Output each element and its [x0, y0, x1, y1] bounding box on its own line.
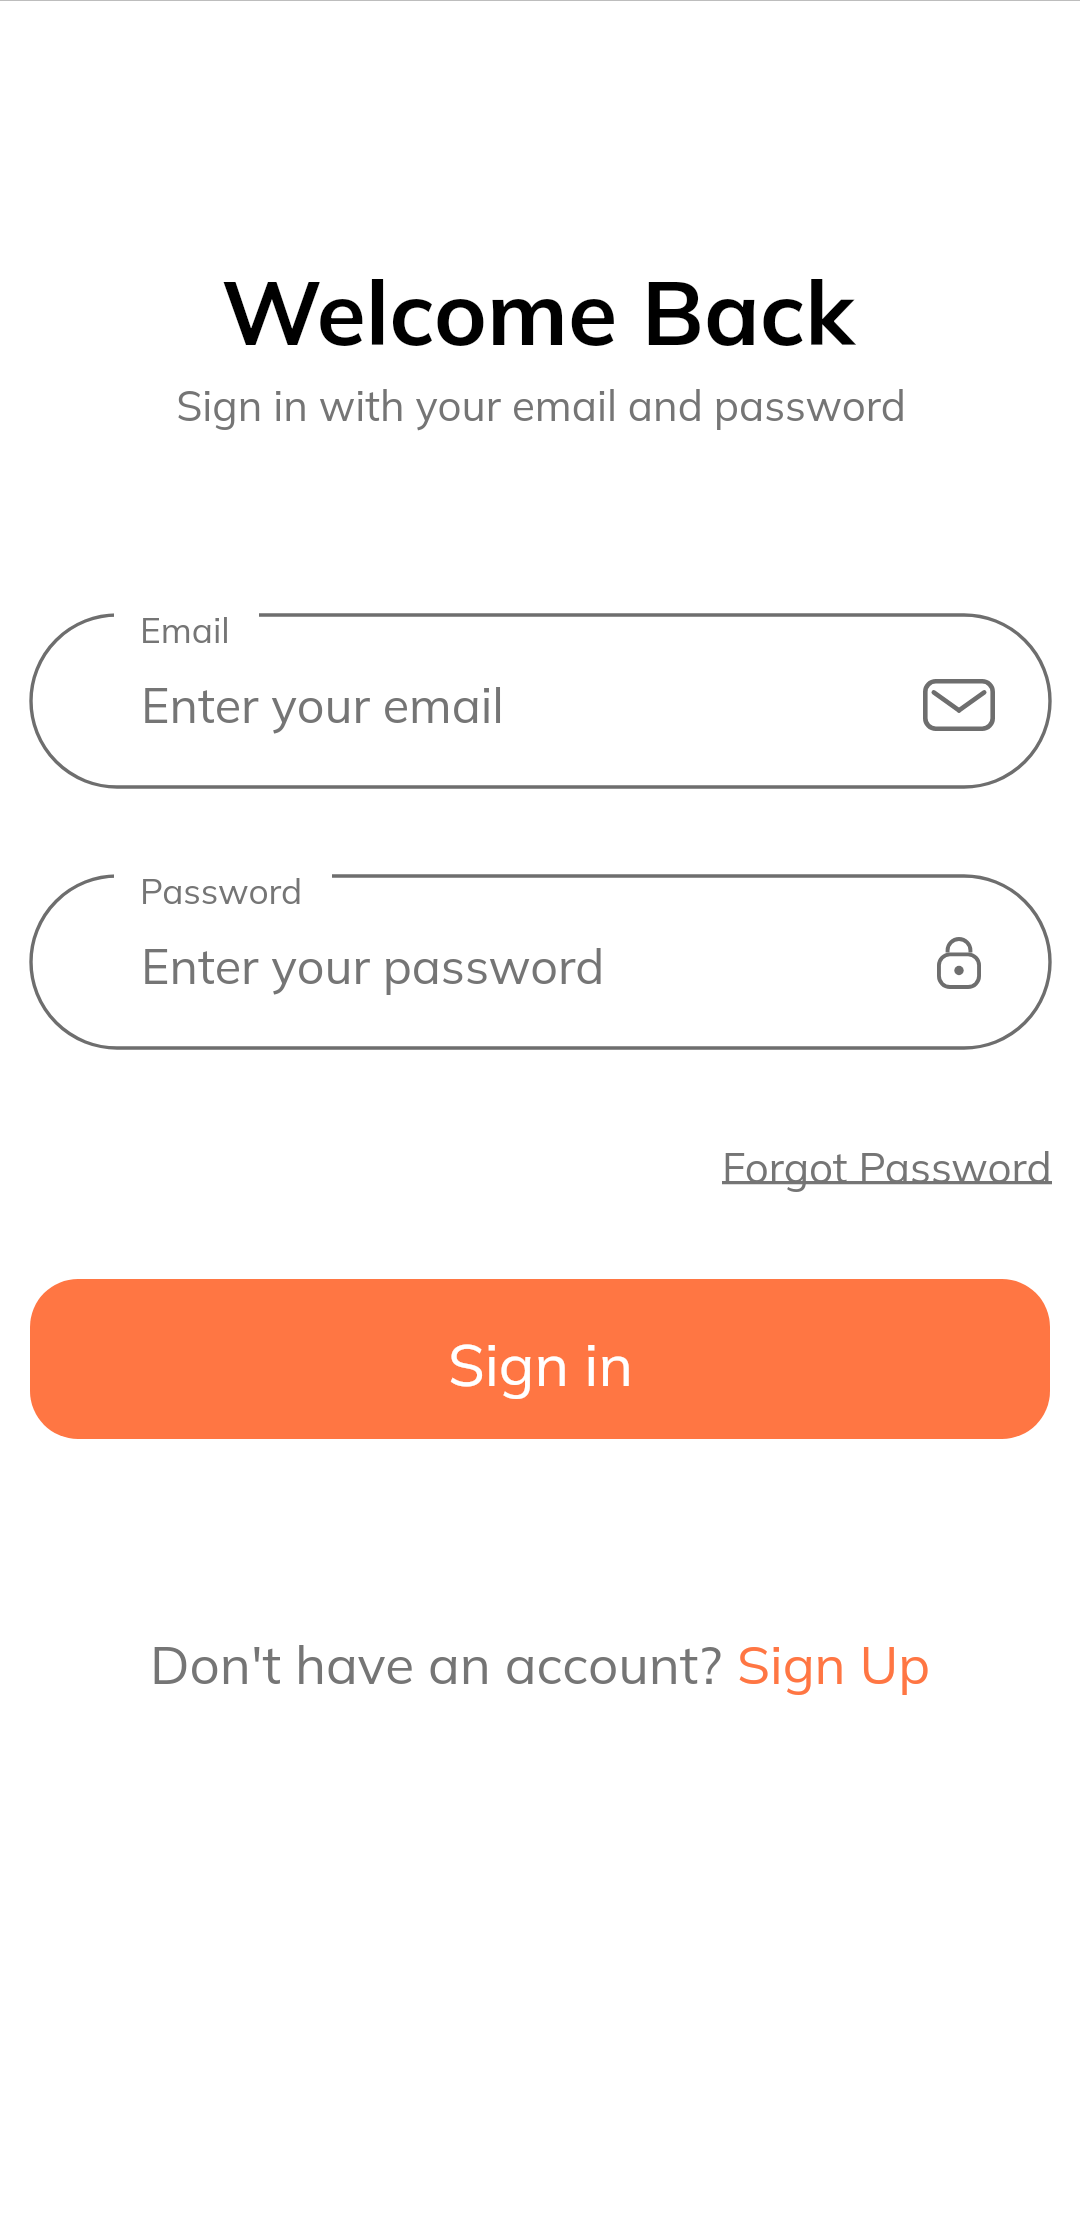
button[interactable]: Forgot Password [722, 1141, 1052, 1194]
staticText: Forgot Password [722, 1141, 1052, 1194]
staticText: Enter your password [141, 935, 605, 996]
other: Email [923, 679, 995, 731]
staticText: Don't have an account? [150, 1631, 737, 1698]
staticText: Email [140, 608, 230, 652]
button[interactable]: Sign Up [737, 1631, 930, 1698]
other: Password [937, 937, 981, 989]
button[interactable]: Email [31, 615, 1050, 787]
staticText: Sign in [448, 1327, 633, 1401]
staticText: Welcome Back [0, 255, 1078, 368]
button[interactable]: Sign in [30, 1279, 1050, 1439]
staticText: Sign in with your email and password [1, 379, 1080, 432]
staticText: Enter your email [141, 674, 504, 735]
button[interactable]: Password [31, 876, 1050, 1048]
staticText: Password [140, 869, 303, 913]
